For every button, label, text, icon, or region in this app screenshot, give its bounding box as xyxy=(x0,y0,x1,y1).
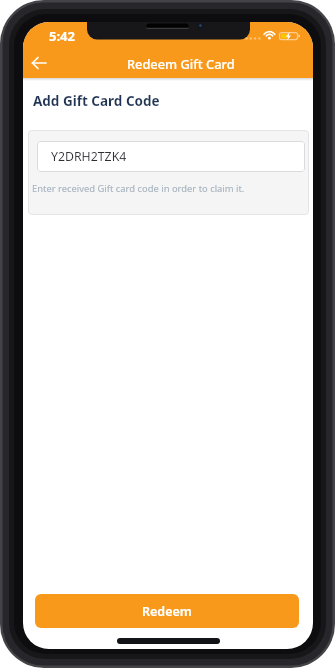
staticText: 5:42 xyxy=(49,27,75,45)
staticText: Y2DRH2TZK4 xyxy=(51,148,127,165)
staticText: Enter received Gift card code in order t… xyxy=(32,182,245,195)
button[interactable]: Redeem xyxy=(35,594,299,628)
staticText: Redeem Gift Card xyxy=(127,55,235,72)
button[interactable]: Y2DRH2TZK4 xyxy=(37,141,305,172)
staticText: Add Gift Card Code xyxy=(33,92,160,110)
button[interactable] xyxy=(31,55,49,71)
staticText: Redeem xyxy=(142,603,192,620)
